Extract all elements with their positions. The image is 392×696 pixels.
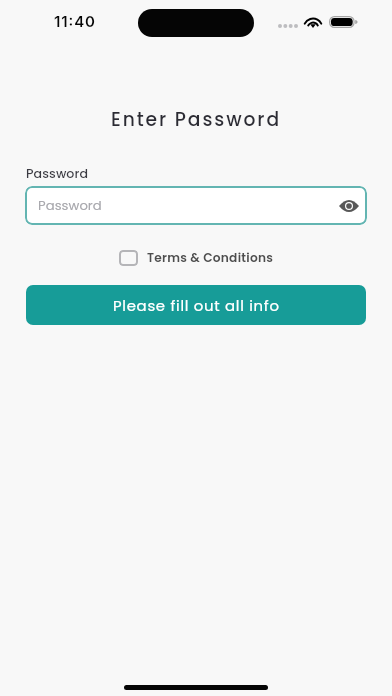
button[interactable]: Password: [25, 186, 367, 225]
button[interactable]: Show password: [336, 193, 362, 219]
staticText: Terms & Conditions: [147, 249, 274, 266]
staticText: Password: [26, 165, 89, 183]
button[interactable]: Terms & Conditions: [117, 246, 276, 269]
staticText: 11:40: [54, 12, 96, 30]
staticText: Enter Password: [0, 106, 392, 132]
staticText: Password: [38, 196, 102, 214]
staticText: Please fill out all info: [113, 295, 280, 316]
button[interactable]: Please fill out all info: [26, 285, 366, 325]
